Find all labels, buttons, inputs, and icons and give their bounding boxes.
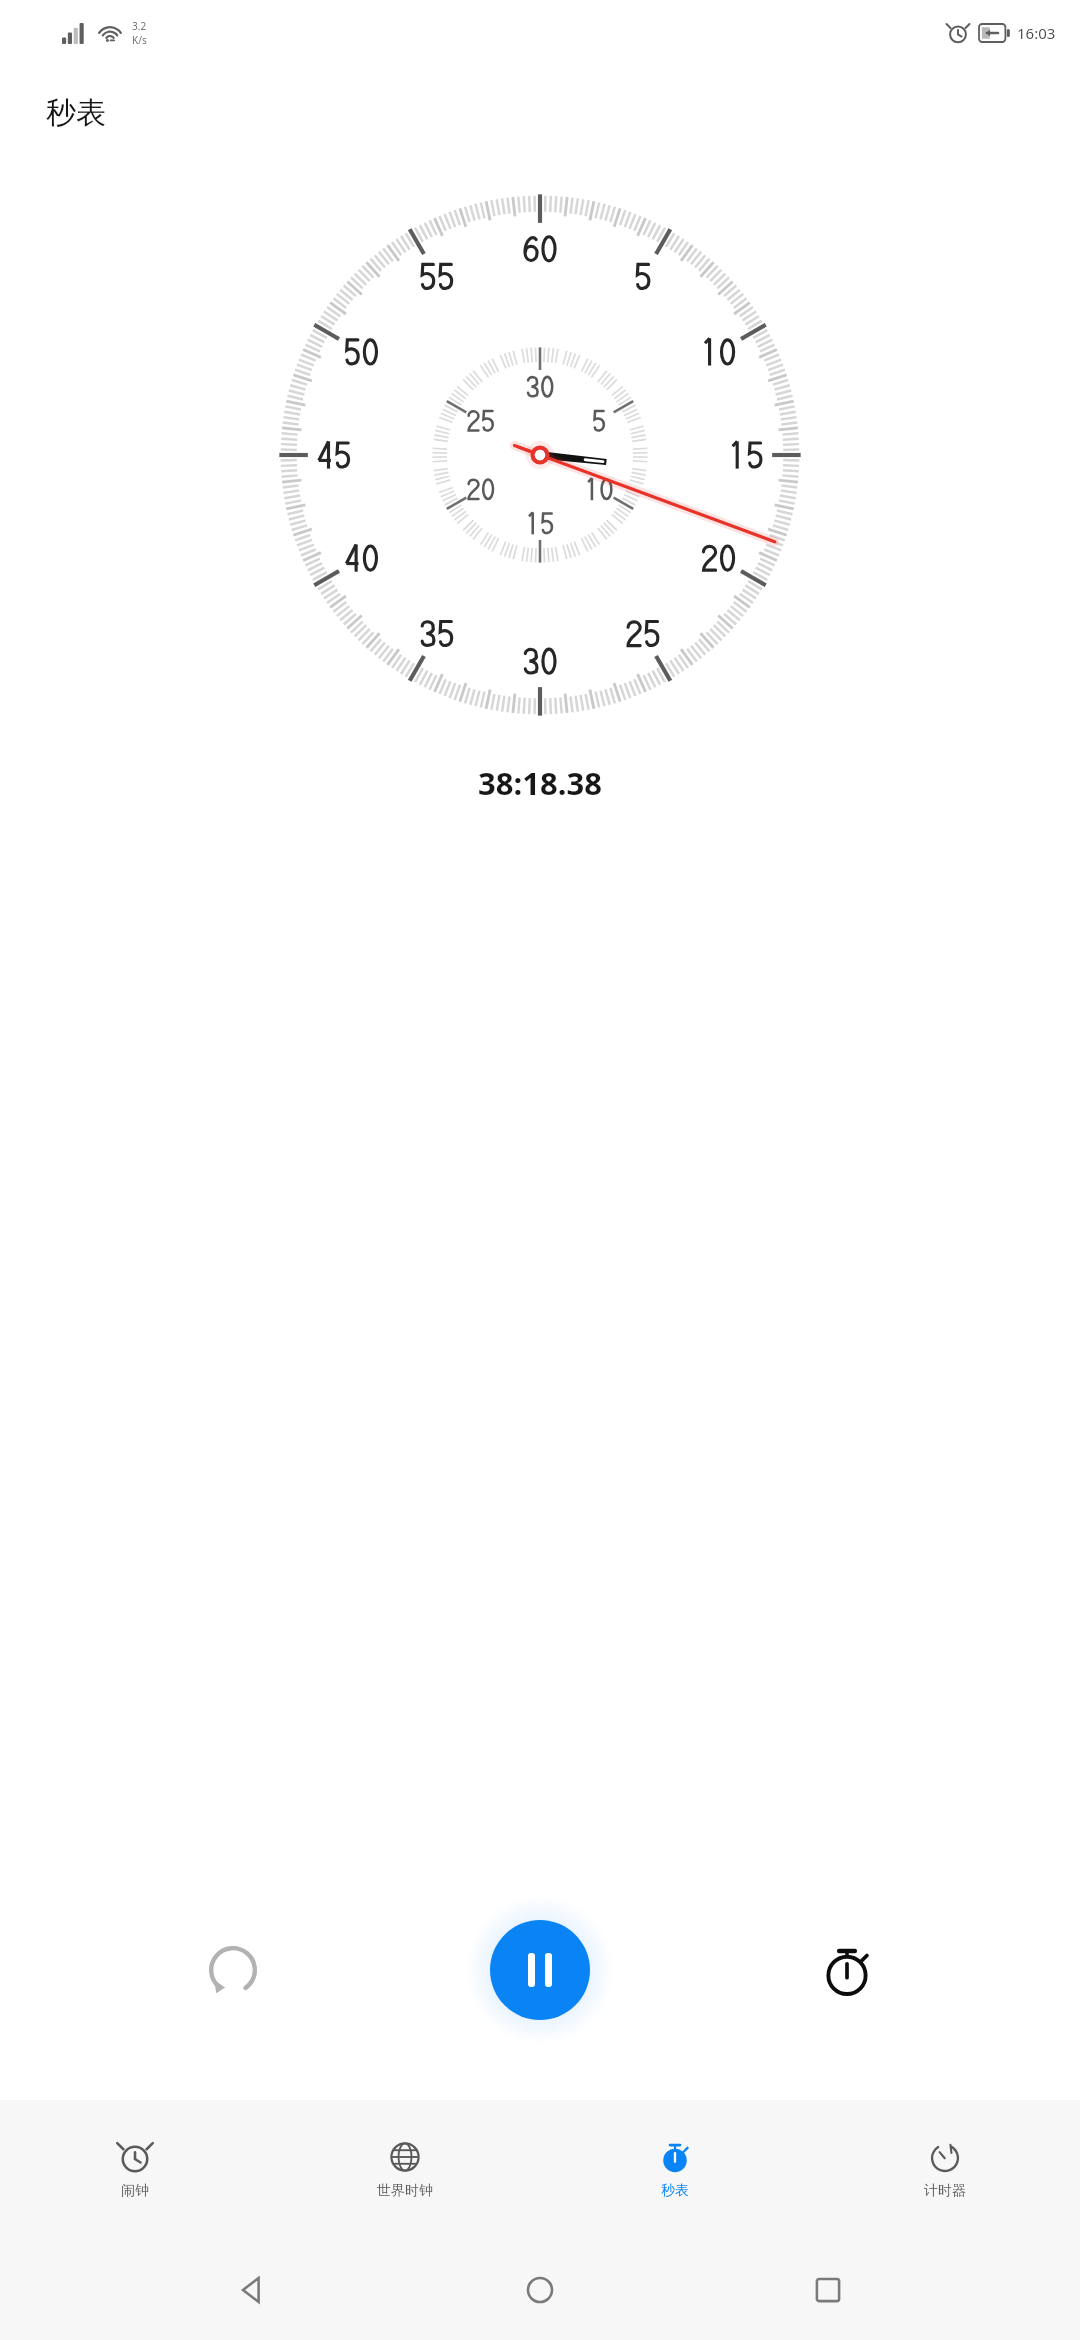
button[interactable]: Reset	[185, 1922, 281, 2018]
staticText: 秒表	[46, 94, 106, 132]
staticText: 16:03	[1017, 23, 1056, 43]
button[interactable]: Recents	[792, 2254, 864, 2326]
staticText: 38:18.38	[478, 762, 602, 804]
button[interactable]: Lap	[799, 1922, 895, 2018]
staticText: 秒表	[661, 2182, 689, 2200]
button[interactable]: 世界时钟	[270, 2100, 540, 2240]
staticText: 3.2	[132, 19, 147, 33]
button[interactable]: 计时器	[810, 2100, 1080, 2240]
staticText: K/s	[132, 33, 147, 47]
button[interactable]: Back	[216, 2254, 288, 2326]
button[interactable]: Home	[504, 2254, 576, 2326]
staticText: 世界时钟	[377, 2182, 433, 2200]
staticText: 闹钟	[121, 2182, 149, 2200]
button[interactable]: 闹钟	[0, 2100, 270, 2240]
button[interactable]: 秒表	[540, 2100, 810, 2240]
staticText: 计时器	[924, 2182, 966, 2200]
button[interactable]: Pause	[466, 1896, 614, 2044]
